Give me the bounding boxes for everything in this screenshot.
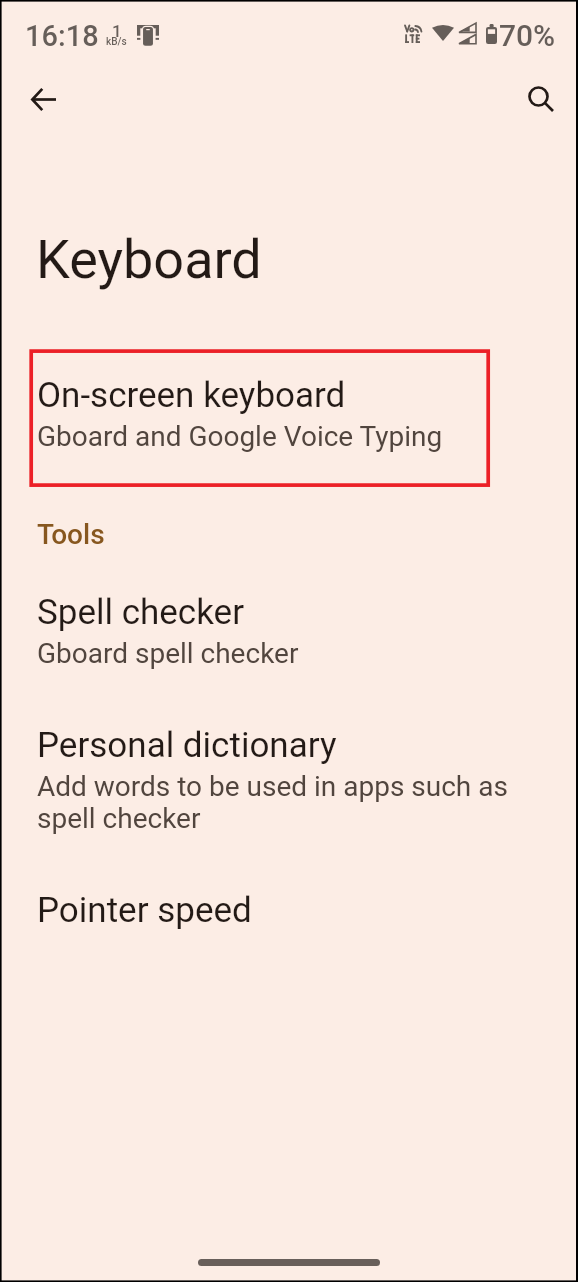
staticText: 70% [499,18,556,53]
button[interactable]: Spell checker [0,592,578,692]
staticText: Personal dictionary [37,725,337,766]
staticText: Keyboard [36,228,262,291]
staticText: 16:18 [25,19,99,53]
button[interactable]: Pointer speed [0,890,578,950]
staticText: kB/s [106,36,127,48]
button[interactable]: On-screen keyboard [0,375,578,475]
staticText: Gboard and Google Voice Typing [37,420,443,453]
staticText: On-screen keyboard [37,375,346,416]
staticText: Gboard spell checker [37,637,299,670]
staticText: Spell checker [37,592,244,633]
staticText: Pointer speed [37,890,252,931]
button[interactable]: Personal dictionary [0,725,578,855]
button[interactable]: Back [21,77,65,121]
staticText: Add words to be used in apps such as spe… [37,770,553,835]
staticText: 1 [112,21,122,41]
staticText: Tools [37,518,105,551]
button[interactable]: Search [520,78,564,122]
